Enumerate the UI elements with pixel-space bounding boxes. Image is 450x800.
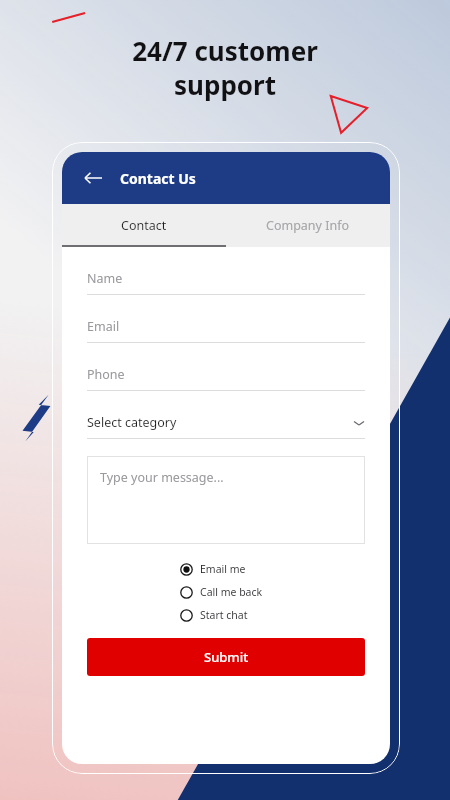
staticText: Name: [87, 270, 123, 287]
staticText: Contact: [121, 217, 167, 234]
button[interactable]: Submit: [87, 638, 365, 676]
staticText: Email me: [200, 562, 246, 576]
button[interactable]: Select category: [87, 414, 365, 439]
button[interactable]: Name: [87, 270, 365, 295]
button[interactable]: Back: [76, 161, 110, 195]
staticText: Phone: [87, 366, 125, 383]
button[interactable]: Phone: [87, 366, 365, 391]
button[interactable]: Contact: [62, 204, 226, 247]
staticText: Contact Us: [120, 169, 196, 188]
staticText: Call me back: [200, 585, 263, 599]
button[interactable]: Type your message...: [87, 456, 365, 544]
staticText: Select category: [87, 414, 353, 431]
button[interactable]: Company Info: [226, 204, 390, 247]
staticText: Company Info: [266, 217, 350, 234]
staticText: Type your message...: [100, 469, 224, 486]
button[interactable]: Email: [87, 318, 365, 343]
staticText: Email: [87, 318, 120, 335]
button[interactable]: Call me back: [180, 585, 365, 599]
staticText: 24/7 customer support: [132, 33, 318, 102]
button[interactable]: Email me: [180, 562, 365, 576]
staticText: Start chat: [200, 608, 248, 622]
button[interactable]: Start chat: [180, 608, 365, 622]
staticText: Submit: [204, 648, 249, 666]
